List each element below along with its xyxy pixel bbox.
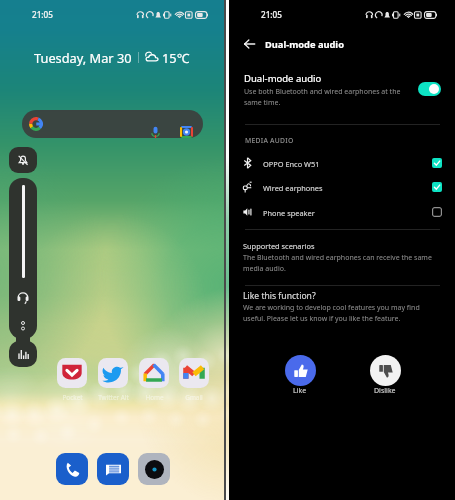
button[interactable]: Dual-mode audio — [229, 68, 455, 116]
button[interactable]: Pocket — [49, 356, 95, 404]
staticText: Wired earphones — [263, 183, 323, 193]
other: Voice search — [151, 126, 160, 138]
staticText: Use both Bluetooth and wired earphones a… — [244, 87, 405, 107]
staticText: Gmail — [185, 393, 203, 402]
button[interactable]: Camera — [138, 453, 170, 485]
staticText: 15℃ — [162, 49, 190, 66]
button[interactable]: Dislike — [354, 355, 416, 395]
button[interactable]: Phone — [56, 453, 88, 485]
button[interactable]: Twitter Alt — [90, 356, 136, 404]
button[interactable]: Home — [131, 356, 177, 404]
staticText: Dual-mode audio — [265, 38, 344, 51]
button[interactable]: Gmail — [171, 356, 217, 404]
button[interactable]: Messages — [97, 453, 129, 485]
button[interactable]: Silent mode — [9, 147, 37, 173]
staticText: Like — [293, 386, 307, 396]
button[interactable]: Phone speaker — [229, 200, 455, 224]
staticText: Tuesday, Mar 30 — [34, 49, 132, 66]
staticText: The Bluetooth and wired earphones can re… — [243, 253, 439, 273]
button[interactable]: Sound effects — [9, 341, 37, 367]
button[interactable]: OPPO Enco W51 — [229, 151, 455, 175]
staticText: Like this function? — [243, 290, 316, 302]
staticText: Dislike — [374, 386, 396, 396]
button[interactable]: Like — [269, 355, 331, 395]
other: Google Lens — [180, 126, 193, 138]
staticText: MEDIA AUDIO — [245, 136, 294, 145]
staticText: Twitter Alt — [98, 393, 129, 402]
staticText: Phone speaker — [263, 208, 315, 218]
button[interactable]: Back — [239, 34, 259, 54]
button[interactable]: Volume — [9, 178, 37, 339]
staticText: 21:05 — [32, 9, 53, 20]
button[interactable]: Wired earphones — [229, 175, 455, 199]
button[interactable]: Search — [22, 110, 203, 138]
staticText: 21:05 — [261, 9, 282, 20]
staticText: OPPO Enco W51 — [263, 159, 320, 169]
staticText: Pocket — [62, 393, 83, 402]
staticText: Supported scenarios — [243, 241, 315, 251]
staticText: Dual-mode audio — [244, 72, 322, 85]
staticText: Home — [145, 393, 164, 402]
staticText: We are working to develop cool features … — [243, 303, 439, 323]
